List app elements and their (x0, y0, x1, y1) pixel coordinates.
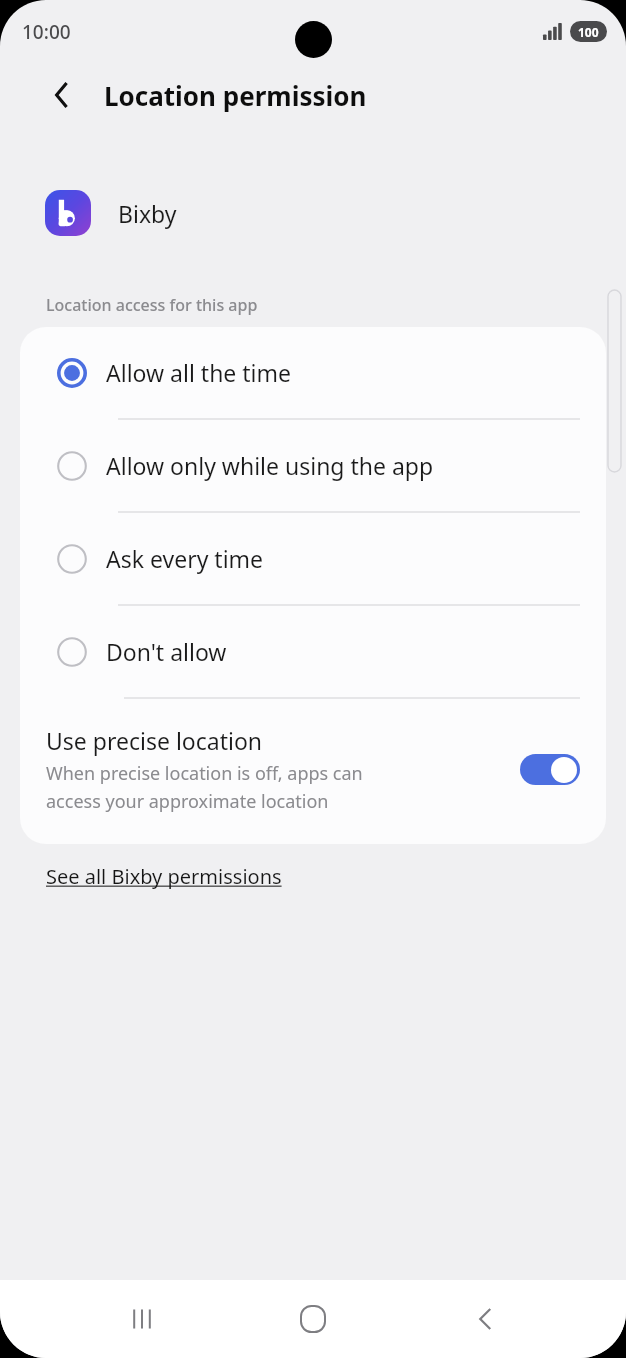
button[interactable]: Don't allow (20, 606, 606, 699)
staticText: Bixby (118, 198, 177, 229)
button[interactable]: Back (36, 69, 88, 121)
staticText: Allow all the time (106, 357, 292, 388)
staticText: access your approximate location (46, 789, 329, 814)
button[interactable]: Use precise location toggle (520, 754, 580, 785)
staticText: Location access for this app (46, 294, 258, 316)
button[interactable]: Allow all the time (20, 327, 606, 420)
staticText: 10:00 (22, 19, 71, 45)
staticText: Location permission (104, 78, 367, 113)
button[interactable]: See all Bixby permissions (46, 863, 282, 890)
staticText: Don't allow (106, 636, 227, 667)
staticText: See all Bixby permissions (46, 863, 282, 890)
button[interactable]: Recent apps (110, 1288, 172, 1350)
button[interactable]: Home (282, 1288, 344, 1350)
button[interactable]: Ask every time (20, 513, 606, 606)
staticText: Ask every time (106, 543, 264, 574)
button[interactable]: Allow only while using the app (20, 420, 606, 513)
staticText: Use precise location (46, 725, 263, 756)
button[interactable]: Back (454, 1288, 516, 1350)
button[interactable]: Use precise location (20, 699, 606, 844)
staticText: Allow only while using the app (106, 450, 434, 481)
staticText: 100 (578, 24, 599, 40)
staticText: When precise location is off, apps can (46, 761, 363, 786)
